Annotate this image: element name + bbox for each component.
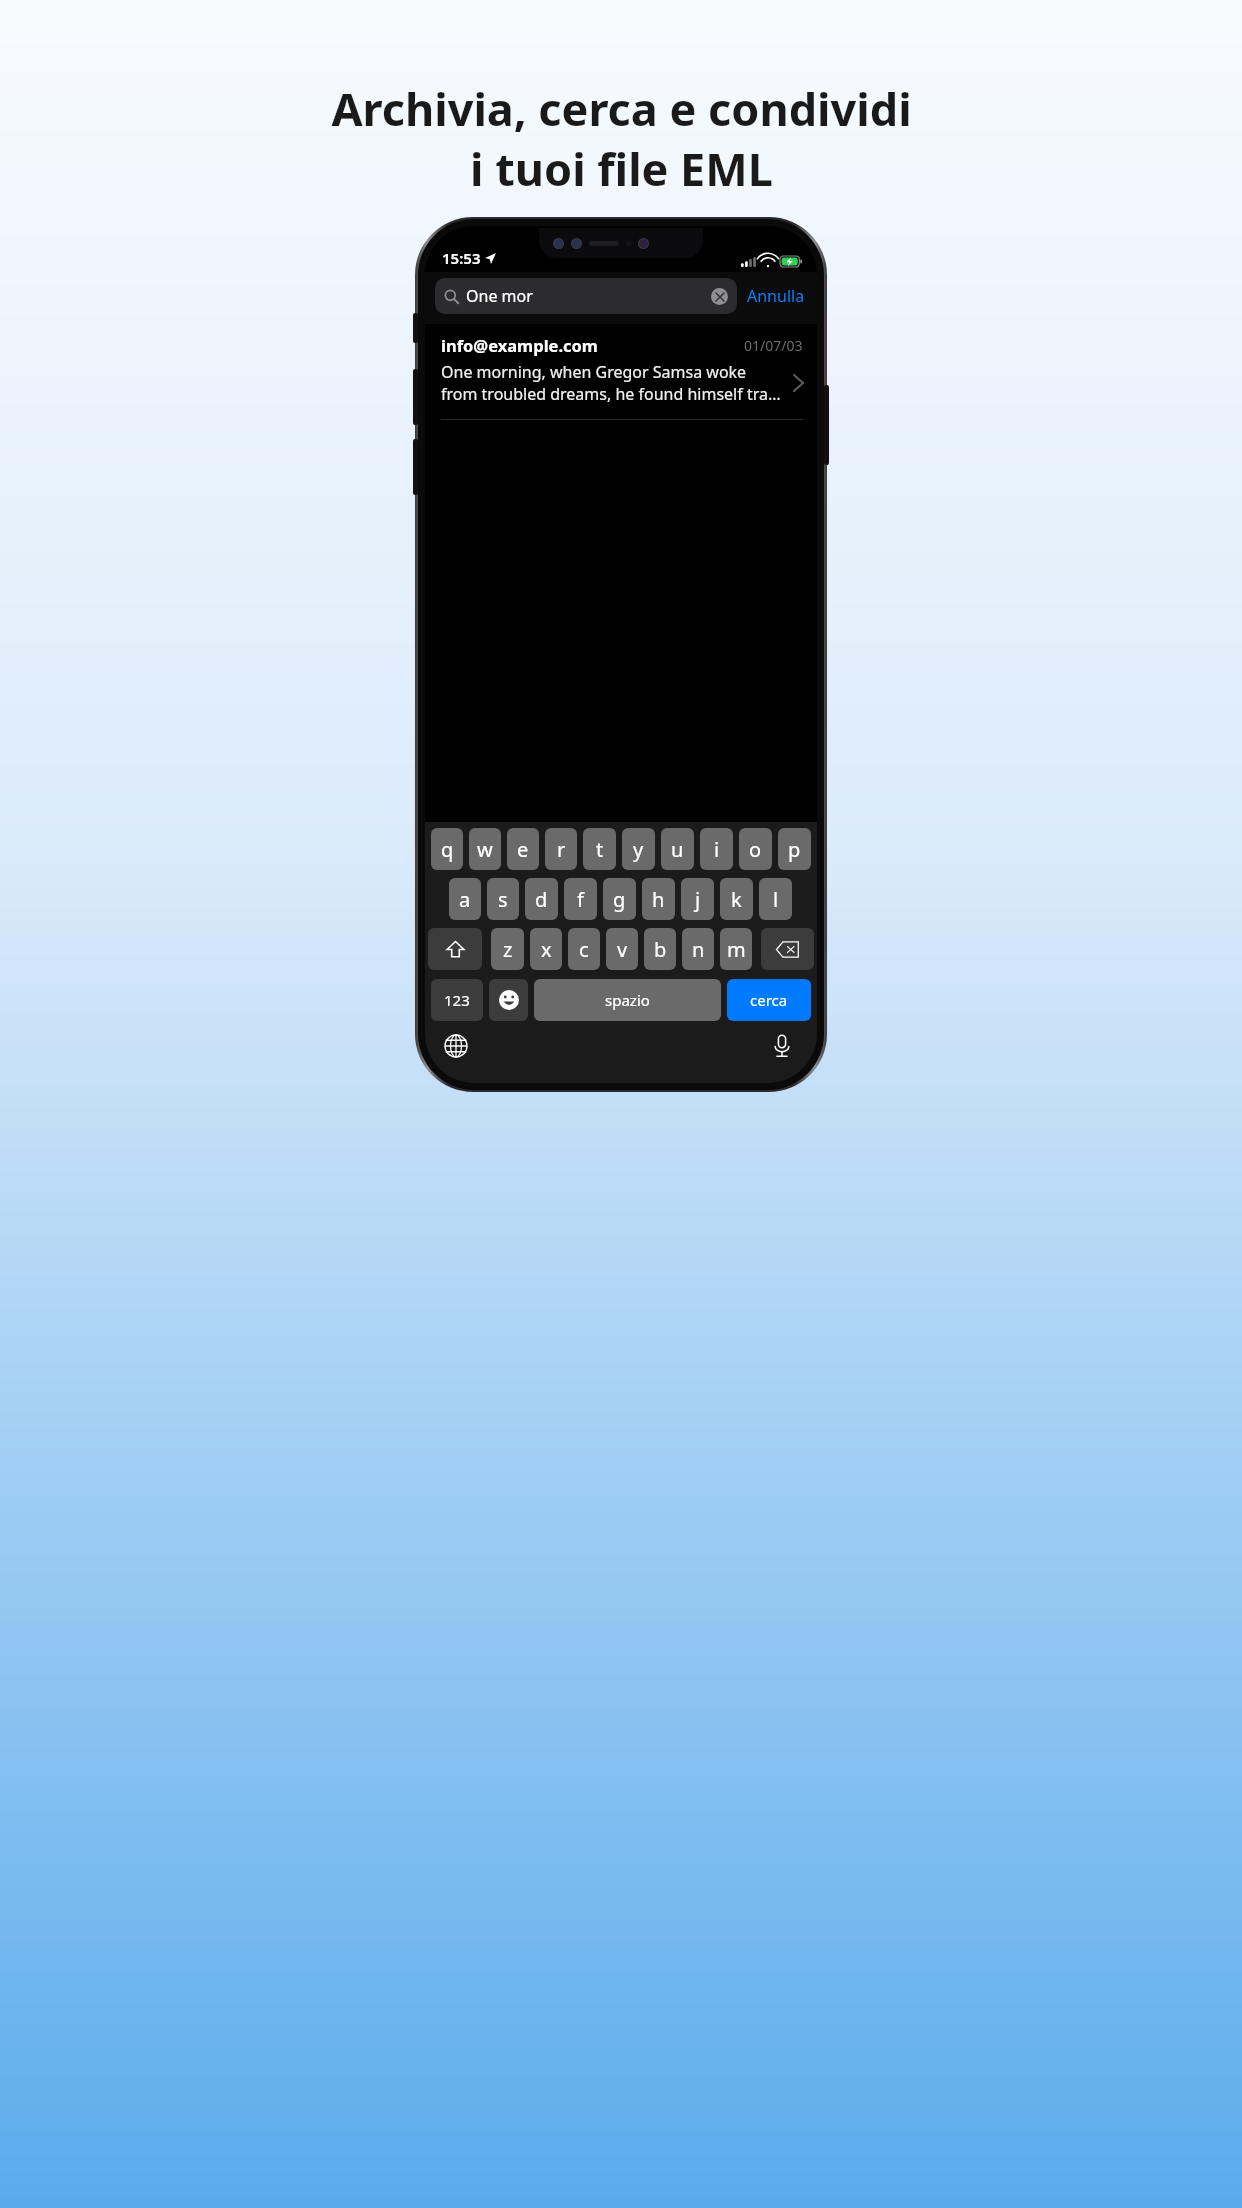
- button[interactable]: Dictation: [769, 1033, 795, 1059]
- staticText: v: [617, 936, 628, 963]
- button[interactable]: Backspace: [761, 928, 814, 970]
- staticText: One morning, when Gregor Samsa woke from…: [441, 361, 781, 405]
- staticText: 15:53: [442, 248, 481, 268]
- button[interactable]: l: [759, 878, 792, 920]
- staticText: d: [535, 886, 548, 913]
- button[interactable]: info@example.com: [425, 324, 817, 420]
- staticText: Annulla: [747, 285, 805, 307]
- staticText: z: [503, 936, 513, 963]
- staticText: c: [579, 936, 589, 963]
- staticText: j: [695, 886, 701, 913]
- staticText: One mor: [466, 285, 533, 307]
- button[interactable]: n: [682, 928, 714, 970]
- staticText: i: [714, 836, 720, 863]
- button[interactable]: e: [507, 828, 539, 870]
- button[interactable]: p: [778, 828, 811, 870]
- button[interactable]: u: [661, 828, 694, 870]
- button[interactable]: o: [739, 828, 772, 870]
- button[interactable]: One mor: [435, 278, 737, 314]
- staticText: a: [459, 886, 471, 913]
- staticText: u: [671, 836, 684, 863]
- staticText: f: [577, 886, 584, 913]
- button[interactable]: Emoji: [489, 979, 528, 1021]
- staticText: h: [652, 886, 665, 913]
- button[interactable]: k: [720, 878, 753, 920]
- staticText: x: [541, 936, 552, 963]
- staticText: spazio: [605, 990, 650, 1010]
- staticText: cerca: [750, 990, 788, 1010]
- button[interactable]: g: [603, 878, 636, 920]
- button[interactable]: z: [491, 928, 524, 970]
- button[interactable]: m: [720, 928, 752, 970]
- staticText: k: [731, 886, 742, 913]
- button[interactable]: q: [431, 828, 463, 870]
- button[interactable]: Shift: [428, 928, 482, 970]
- button[interactable]: h: [642, 878, 675, 920]
- button[interactable]: spazio: [534, 979, 721, 1021]
- staticText: l: [773, 886, 779, 913]
- staticText: g: [613, 886, 626, 913]
- button[interactable]: i: [700, 828, 733, 870]
- staticText: y: [633, 836, 644, 863]
- staticText: 123: [444, 990, 470, 1010]
- staticText: t: [596, 836, 604, 863]
- button[interactable]: s: [487, 878, 519, 920]
- button[interactable]: x: [530, 928, 562, 970]
- staticText: s: [498, 886, 508, 913]
- staticText: m: [727, 936, 746, 963]
- button[interactable]: cerca: [727, 979, 811, 1021]
- staticText: o: [749, 836, 762, 863]
- button[interactable]: f: [564, 878, 597, 920]
- button[interactable]: Clear text: [711, 288, 728, 305]
- staticText: b: [654, 936, 667, 963]
- button[interactable]: j: [681, 878, 714, 920]
- staticText: r: [557, 836, 566, 863]
- button[interactable]: a: [449, 878, 481, 920]
- staticText: n: [692, 936, 705, 963]
- staticText: w: [477, 836, 493, 863]
- button[interactable]: v: [606, 928, 638, 970]
- staticText: p: [788, 836, 801, 863]
- button[interactable]: w: [469, 828, 501, 870]
- button[interactable]: d: [525, 878, 558, 920]
- button[interactable]: c: [568, 928, 600, 970]
- button[interactable]: y: [622, 828, 655, 870]
- button[interactable]: 123: [431, 979, 483, 1021]
- staticText: Archivia, cerca e condividi i tuoi file …: [331, 78, 912, 199]
- button[interactable]: t: [583, 828, 616, 870]
- button[interactable]: Change keyboard: [443, 1033, 469, 1059]
- button[interactable]: b: [644, 928, 676, 970]
- staticText: e: [517, 836, 529, 863]
- staticText: info@example.com: [441, 334, 598, 356]
- button[interactable]: Annulla: [747, 281, 805, 311]
- button[interactable]: r: [545, 828, 577, 870]
- staticText: q: [441, 836, 454, 863]
- staticText: 01/07/03: [744, 336, 803, 355]
